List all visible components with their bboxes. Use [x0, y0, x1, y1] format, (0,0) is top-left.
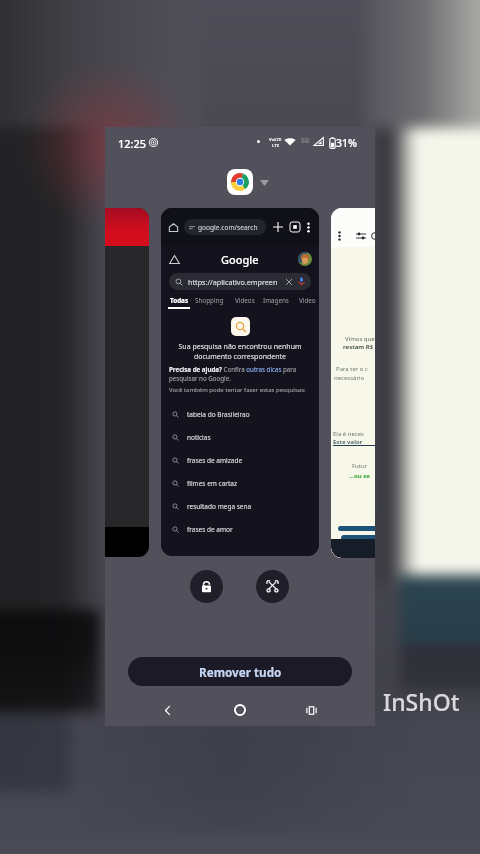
button[interactable]: Home	[224, 694, 256, 726]
button[interactable]: Back	[151, 694, 183, 726]
staticText: frases de amizade	[187, 456, 243, 465]
staticText: Para ter o c	[336, 365, 368, 373]
staticText: VoLTE	[269, 137, 282, 143]
button[interactable]: Imagens	[263, 296, 289, 305]
staticText: Futur	[352, 462, 368, 470]
staticText: Remover tudo	[199, 664, 282, 680]
staticText: noticias	[187, 433, 211, 442]
staticText: frases de amor	[187, 525, 233, 534]
staticText: Precisa de ajuda? Confira outras dicas p…	[169, 365, 311, 383]
staticText: Você também pode tentar fazer estas pesq…	[169, 386, 306, 394]
staticText: Este valor	[333, 438, 363, 446]
staticText: google.com/search	[198, 223, 258, 232]
staticText: 12:25	[118, 136, 147, 151]
staticText: 5G	[301, 136, 310, 145]
button[interactable]: frases de amizade	[172, 449, 319, 472]
staticText: Videos	[235, 296, 255, 305]
staticText: necessário	[334, 374, 365, 382]
button[interactable]: frases de amor	[172, 518, 319, 541]
button[interactable]: Recents	[295, 694, 327, 726]
staticText: Shopping	[195, 296, 224, 305]
staticText: InShOt	[383, 686, 460, 717]
button[interactable]: tabela do Brasileirao	[172, 403, 319, 426]
button[interactable]: noticias	[172, 426, 319, 449]
staticText: resultado mega sena	[187, 502, 252, 511]
staticText: Sua pesquisa não encontrou nenhum docume…	[172, 342, 308, 362]
button[interactable]: Todas	[168, 296, 190, 309]
staticText: Ela é neces	[333, 430, 364, 438]
button[interactable]: https://aplicativo.empreen	[175, 273, 306, 290]
staticText: 31%	[336, 136, 357, 150]
staticText: restam R$	[343, 343, 374, 351]
button[interactable]: Shopping	[195, 296, 224, 305]
button[interactable]	[105, 208, 149, 557]
staticText: https://aplicativo.empreen	[188, 277, 278, 287]
staticText: tabela do Brasileirao	[187, 410, 250, 419]
button[interactable]: Lock	[190, 570, 223, 603]
staticText: Todas	[170, 296, 189, 305]
staticText: Vimos que	[345, 335, 375, 343]
button[interactable]: Screenshot	[256, 570, 289, 603]
button[interactable]: resultado mega sena	[172, 495, 319, 518]
button[interactable]: google.com/search	[161, 208, 319, 556]
staticText: ...ou se	[349, 472, 370, 480]
button[interactable]: filmes em cartaz	[172, 472, 319, 495]
button[interactable]: Expand app options	[260, 180, 269, 186]
button[interactable]: Chrome	[227, 169, 253, 195]
staticText: Google	[221, 252, 259, 267]
staticText: filmes em cartaz	[187, 479, 238, 488]
button[interactable]: Video	[299, 296, 316, 305]
button[interactable]: Remover tudo	[128, 657, 352, 686]
button[interactable]: Vimos que	[331, 208, 375, 558]
staticText: Imagens	[263, 296, 289, 305]
staticText: LTE	[272, 143, 280, 149]
button[interactable]: Videos	[235, 296, 255, 305]
staticText: Video	[299, 296, 316, 305]
